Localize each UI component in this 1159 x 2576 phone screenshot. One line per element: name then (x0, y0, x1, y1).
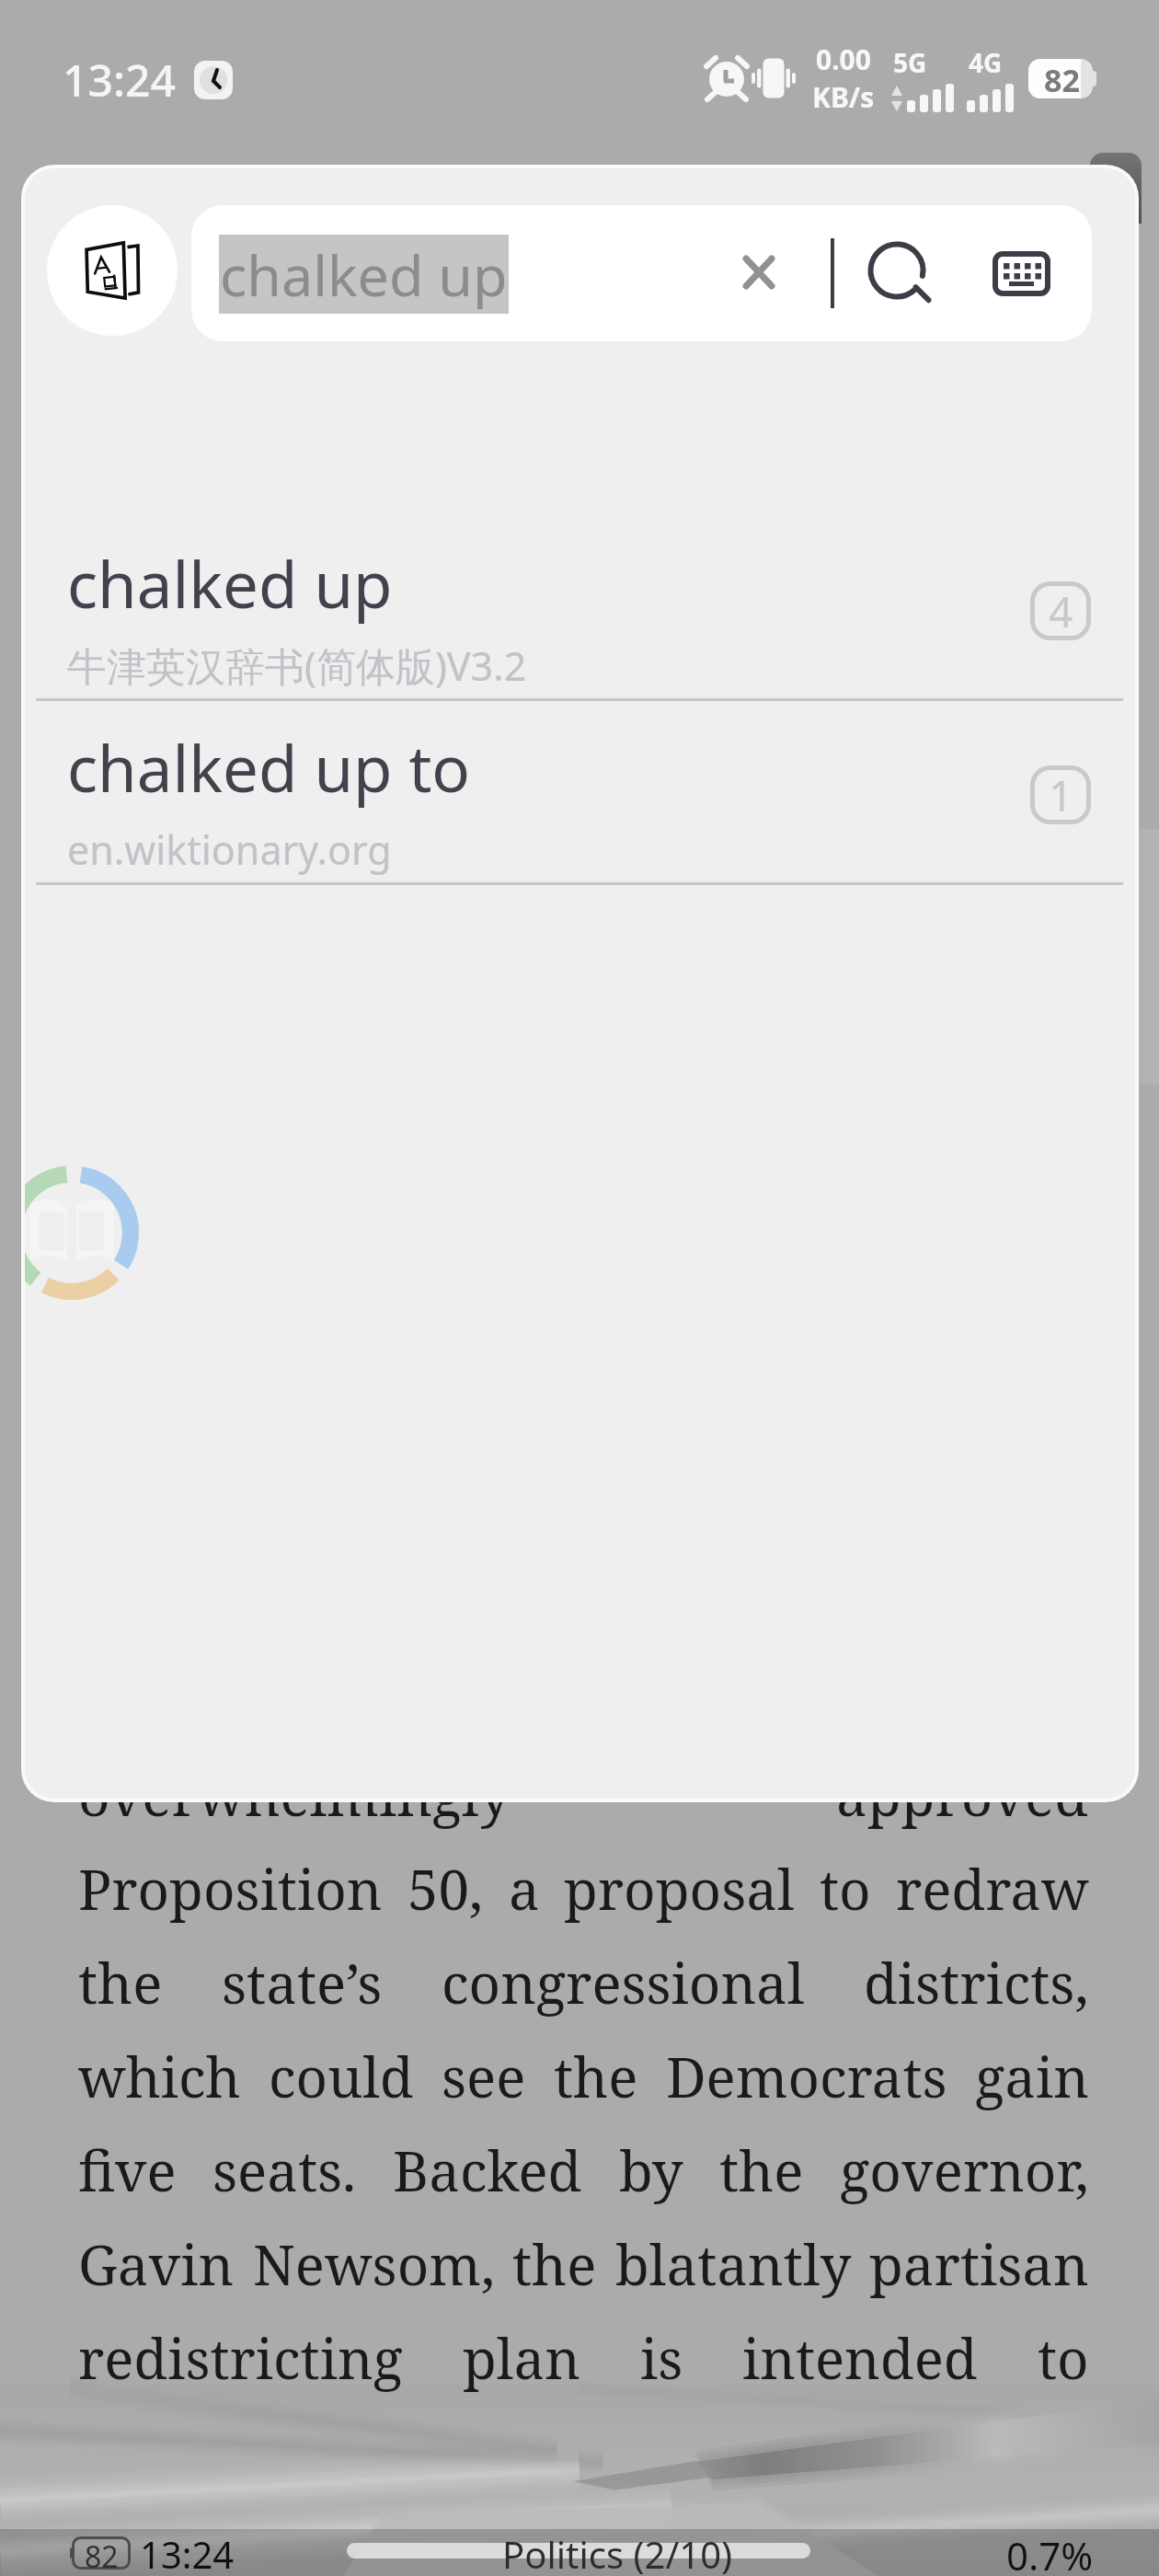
button[interactable]: Clear (727, 240, 791, 305)
staticText: a (509, 1851, 540, 1926)
staticText: Politics (2/10) (502, 2529, 733, 2576)
staticText: chalked up (220, 236, 508, 313)
staticText: 1 (1049, 766, 1073, 824)
staticText: KB/s (812, 78, 875, 116)
staticText: 13:24 (140, 2529, 235, 2576)
button[interactable]: chalked up to (25, 701, 1135, 885)
button[interactable]: Dictionary (47, 205, 178, 336)
staticText: state’s (222, 1945, 383, 2020)
staticText: en.wiktionary.org (67, 822, 392, 877)
staticText: partisan (869, 2226, 1089, 2302)
staticText: redraw (896, 1851, 1089, 1926)
staticText: intended (742, 2320, 978, 2396)
staticText: the (512, 2226, 597, 2302)
staticText: the (78, 1945, 163, 2020)
staticText: to (820, 1851, 871, 1926)
staticText: the (719, 2133, 804, 2208)
staticText: see (442, 2039, 526, 2114)
staticText: 13:24 (63, 50, 176, 109)
staticText: 4 (1049, 582, 1073, 640)
staticText: chalked up (67, 540, 393, 627)
staticText: the (554, 2039, 638, 2114)
staticText: Gavin (78, 2226, 235, 2302)
staticText: Newsom, (253, 2226, 495, 2302)
staticText: is (640, 2320, 683, 2396)
staticText: five (78, 2133, 177, 2208)
staticText: Democrats (666, 2039, 947, 2114)
staticText: congressional (442, 1945, 805, 2020)
button[interactable]: Keyboard (978, 234, 1064, 313)
staticText: gain (975, 2039, 1089, 2114)
staticText: 5G (893, 45, 927, 80)
staticText: chalked up to (67, 724, 471, 811)
staticText: Proposition (78, 1851, 383, 1926)
staticText: 50, (407, 1851, 484, 1926)
staticText: approved (836, 1757, 1089, 1833)
staticText: blatantly (615, 2226, 852, 2302)
button[interactable]: Search (864, 238, 932, 306)
staticText: districts, (864, 1945, 1089, 2020)
staticText: 0.00 (816, 40, 871, 78)
staticText: to (1038, 2320, 1089, 2396)
staticText: could (269, 2039, 414, 2114)
staticText: seats. (212, 2133, 357, 2208)
staticText: proposal (564, 1851, 795, 1926)
button[interactable]: chalked up (25, 517, 1135, 701)
staticText: 82 (1044, 59, 1080, 97)
staticText: 4G (969, 45, 1003, 80)
staticText: governor, (840, 2133, 1089, 2208)
staticText: 牛津英汉辞书(简体版)V3.2 (67, 638, 527, 693)
staticText: Backed (393, 2133, 582, 2208)
staticText: which (78, 2039, 241, 2114)
staticText: 0.7% (1006, 2529, 1094, 2576)
staticText: overwhelmingly (78, 1757, 511, 1833)
staticText: by (619, 2133, 683, 2208)
staticText: plan (463, 2320, 580, 2396)
staticText: 82 (85, 2536, 119, 2570)
staticText: redistricting (78, 2320, 403, 2396)
